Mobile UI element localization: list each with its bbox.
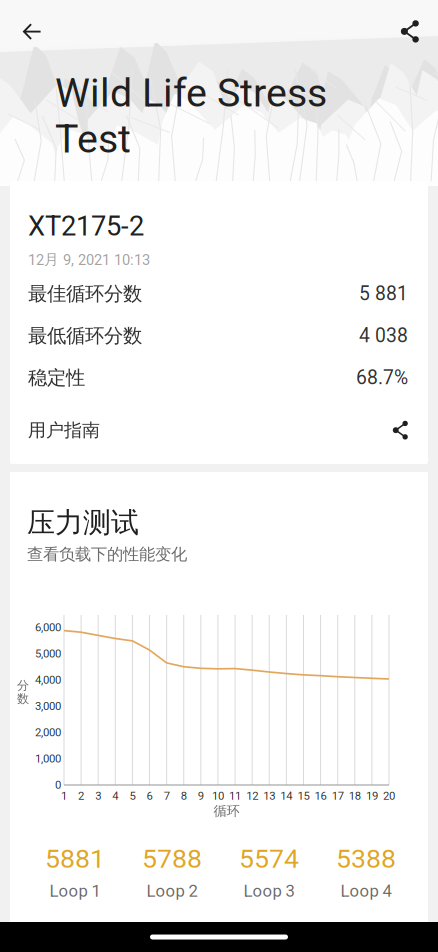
button[interactable]: Back: [14, 14, 50, 49]
staticText: 循环: [213, 803, 239, 819]
button[interactable]: 5788: [131, 832, 213, 904]
staticText: 18: [349, 789, 361, 803]
staticText: XT2175-2: [28, 210, 144, 242]
staticText: 2,000: [35, 726, 61, 739]
staticText: 稳定性: [28, 366, 85, 390]
staticText: 12: [246, 789, 258, 803]
staticText: Loop 2: [146, 881, 197, 901]
staticText: 0: [55, 778, 61, 792]
staticText: 3: [95, 789, 101, 803]
staticText: 13: [263, 789, 275, 803]
staticText: Wild Life Stress: [55, 70, 327, 116]
staticText: Test: [55, 116, 131, 162]
staticText: Loop 1: [49, 881, 100, 901]
staticText: 10: [212, 789, 224, 803]
staticText: 19: [366, 789, 378, 803]
staticText: 1: [61, 789, 67, 803]
button[interactable]: 5388: [325, 832, 407, 904]
staticText: 3,000: [35, 700, 61, 713]
staticText: 查看负载下的性能变化: [27, 544, 187, 564]
staticText: 5881: [45, 843, 105, 874]
staticText: 68.7%: [356, 366, 408, 389]
staticText: 1,000: [35, 752, 61, 765]
staticText: 最低循环分数: [28, 324, 142, 348]
button[interactable]: 5574: [228, 832, 310, 904]
staticText: 4,000: [35, 673, 61, 687]
staticText: 分: [17, 678, 29, 693]
staticText: 17: [332, 789, 344, 803]
staticText: 11: [229, 789, 241, 803]
staticText: 压力测试: [27, 505, 139, 540]
staticText: 5574: [239, 843, 299, 874]
button[interactable]: 用户指南: [10, 399, 428, 462]
button[interactable]: 5881: [34, 832, 116, 904]
staticText: Loop 4: [340, 881, 391, 901]
staticText: 14: [280, 789, 292, 803]
staticText: 5,000: [35, 647, 61, 660]
staticText: 5 881: [359, 282, 408, 305]
staticText: 15: [297, 789, 309, 803]
staticText: 9: [198, 789, 204, 803]
staticText: 最佳循环分数: [28, 282, 142, 306]
staticText: 4: [112, 789, 118, 803]
staticText: 20: [383, 789, 395, 803]
staticText: 2: [78, 789, 84, 803]
staticText: 4 038: [359, 324, 408, 347]
staticText: 6: [146, 789, 152, 803]
staticText: 16: [315, 789, 327, 803]
button[interactable]: Share: [393, 12, 427, 51]
staticText: 12月 9, 2021 10:13: [28, 250, 150, 269]
staticText: 5: [129, 789, 135, 803]
staticText: 8: [181, 789, 187, 803]
staticText: 7: [164, 789, 170, 803]
staticText: Loop 3: [243, 881, 294, 901]
staticText: 5388: [336, 843, 396, 874]
staticText: 5788: [142, 843, 202, 874]
staticText: 数: [17, 691, 29, 706]
staticText: 6,000: [35, 621, 61, 634]
staticText: 用户指南: [28, 419, 100, 442]
